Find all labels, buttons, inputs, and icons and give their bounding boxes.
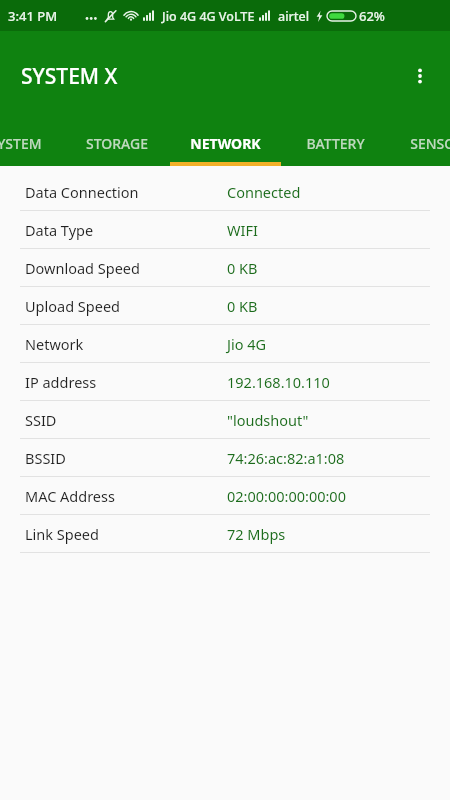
button[interactable]: SENSORS (390, 121, 450, 166)
staticText: 192.168.10.110 (227, 372, 330, 392)
staticText: NETWORK (190, 134, 261, 153)
button[interactable]: IP address (0, 363, 450, 401)
staticText: airtel (278, 8, 310, 25)
staticText: STORAGE (86, 134, 148, 153)
staticText: Jio 4G 4G VoLTE (162, 8, 255, 25)
staticText: IP address (25, 372, 97, 392)
button[interactable]: Network (0, 325, 450, 363)
staticText: Data Connection (25, 182, 139, 202)
staticText: MAC Address (25, 486, 115, 506)
button[interactable]: BSSID (0, 439, 450, 477)
staticText: BATTERY (306, 134, 365, 153)
staticText: Download Speed (25, 258, 140, 278)
staticText: Network (25, 334, 84, 354)
staticText: 72 Mbps (227, 524, 286, 544)
button[interactable]: More options (398, 54, 442, 98)
button[interactable]: Link Speed (0, 515, 450, 553)
button[interactable]: Download Speed (0, 249, 450, 287)
staticText: SYSTEM X (21, 62, 118, 91)
button[interactable]: SYSTEM (0, 121, 62, 166)
staticText: SSID (25, 410, 57, 430)
button[interactable]: Data Type (0, 211, 450, 249)
staticText: Connected (227, 182, 301, 202)
staticText: Jio 4G (227, 334, 267, 354)
staticText: Data Type (25, 220, 94, 240)
staticText: 0 KB (227, 258, 258, 278)
button[interactable]: NETWORK (170, 121, 281, 166)
staticText: Link Speed (25, 524, 99, 544)
staticText: 02:00:00:00:00:00 (227, 486, 346, 506)
button[interactable]: Upload Speed (0, 287, 450, 325)
staticText: BSSID (25, 448, 66, 468)
button[interactable]: MAC Address (0, 477, 450, 515)
staticText: 0 KB (227, 296, 258, 316)
button[interactable]: STORAGE (66, 121, 168, 166)
staticText: WIFI (227, 220, 258, 240)
button[interactable]: BATTERY (284, 121, 386, 166)
staticText: SYSTEM (0, 134, 42, 153)
button[interactable]: SSID (0, 401, 450, 439)
staticText: Upload Speed (25, 296, 121, 316)
staticText: "loudshout" (227, 410, 309, 430)
staticText: 62% (359, 7, 385, 25)
staticText: 74:26:ac:82:a1:08 (227, 448, 345, 468)
staticText: 3:41 PM (8, 7, 58, 25)
staticText: SENSORS (410, 134, 450, 153)
button[interactable]: Data Connection (0, 173, 450, 211)
